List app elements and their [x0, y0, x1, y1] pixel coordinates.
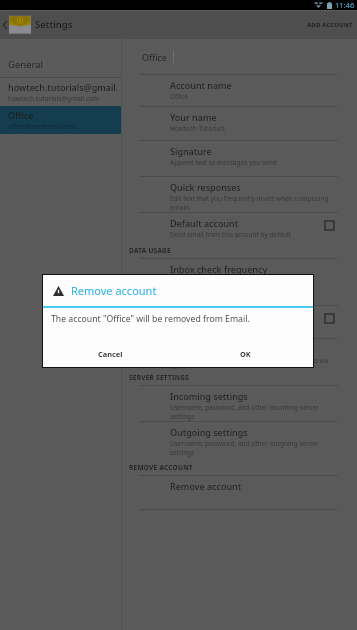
button[interactable]: Navigate up [0, 10, 31, 39]
staticText: Account name [170, 79, 232, 91]
button[interactable]: Remove account [122, 476, 357, 509]
staticText: Office [8, 109, 34, 121]
staticText: Your name [170, 111, 217, 123]
button[interactable]: Sync email [122, 306, 357, 338]
button[interactable]: Signature [122, 141, 357, 176]
button[interactable]: Your name [122, 107, 357, 140]
staticText: Remove account [170, 480, 242, 492]
staticText: SERVER SETTINGS [129, 373, 190, 382]
staticText: ADD ACCOUNT [307, 21, 353, 29]
button[interactable]: Incoming settings [122, 386, 357, 421]
staticText: Quick responses [170, 181, 241, 193]
staticText: Inbox check frequency [170, 263, 268, 275]
staticText: Outgoing settings [170, 426, 248, 438]
staticText: Edit text that you frequently insert whe… [170, 194, 334, 212]
button[interactable]: Outgoing settings [122, 422, 357, 459]
staticText: REMOVE ACCOUNT [129, 463, 193, 472]
button[interactable]: howtech.tutorials@gmail. [0, 78, 121, 106]
staticText: OK [240, 349, 251, 359]
staticText: Howtech Tutorials [170, 124, 225, 133]
button[interactable]: Office [0, 106, 121, 134]
button[interactable]: Cancel [43, 340, 178, 367]
staticText: 11:46 [335, 0, 355, 10]
button[interactable]: ADD ACCOUNT [297, 10, 357, 39]
staticText: office@northintel.com [8, 122, 76, 131]
staticText: Send email from this account by default [170, 230, 292, 239]
staticText: Download attachments [170, 343, 271, 355]
button[interactable]: Quick responses [122, 177, 357, 212]
staticText: howtech.tutorials@gmail.com [8, 94, 100, 103]
button[interactable]: Default account [122, 213, 357, 242]
staticText: General [8, 58, 44, 71]
staticText: Username, password, and other outgoing s… [170, 439, 334, 457]
button[interactable]: OK [178, 340, 313, 367]
staticText: Signature [170, 145, 212, 157]
staticText: Append text to messages you send [170, 158, 277, 167]
staticText: Office [170, 92, 189, 101]
button[interactable]: Download attachments [122, 339, 357, 369]
staticText: The account "Office" will be removed fro… [51, 313, 250, 325]
staticText: Settings [35, 18, 73, 31]
button[interactable]: General [0, 39, 121, 77]
staticText: Username, password, and other incoming s… [170, 403, 334, 421]
staticText: Default account [170, 217, 239, 229]
staticText: Cancel [98, 349, 123, 359]
staticText: Sync email [170, 310, 216, 322]
button[interactable]: Inbox check frequency [122, 259, 357, 305]
staticText: Office [142, 51, 167, 63]
staticText: Incoming settings [170, 390, 248, 402]
staticText: DATA USAGE [129, 246, 171, 255]
staticText: Remove account [71, 283, 157, 298]
staticText: Auto-download attachments to recent mess… [170, 356, 334, 369]
button[interactable]: Account name [122, 75, 357, 106]
staticText: howtech.tutorials@gmail. [8, 81, 119, 93]
